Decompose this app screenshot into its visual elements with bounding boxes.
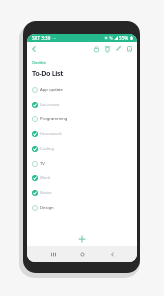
staticText: Programming [40, 116, 68, 122]
button[interactable]: Lock [91, 43, 102, 54]
button[interactable]: Work [32, 171, 132, 185]
button[interactable]: Notes [32, 186, 132, 200]
button[interactable]: Coding [32, 142, 132, 156]
button[interactable]: Homework [32, 127, 132, 141]
button[interactable]: Add task [76, 233, 88, 245]
staticText: TV [40, 161, 45, 167]
button[interactable]: Home [76, 248, 88, 260]
button[interactable]: TV [32, 157, 132, 171]
staticText: Homework [40, 131, 62, 137]
button[interactable]: Design [32, 201, 132, 215]
staticText: App update [40, 87, 63, 93]
staticText: Checklist [32, 60, 46, 65]
staticText: Coding [40, 146, 54, 152]
button[interactable]: Back [106, 248, 118, 260]
button[interactable]: Bookmark [124, 43, 135, 54]
staticText: 55% [119, 35, 129, 41]
button[interactable]: Edit [113, 43, 124, 54]
button[interactable]: Back [28, 43, 39, 54]
button[interactable]: Recents [46, 248, 58, 260]
staticText: Work [40, 175, 51, 181]
staticText: To-Do List [32, 68, 63, 78]
staticText: SKT 3:39 [32, 35, 51, 41]
staticText: Ice-cream [40, 102, 60, 108]
staticText: Notes [40, 190, 52, 196]
staticText: Design [40, 205, 54, 211]
button[interactable]: App update [32, 83, 132, 97]
button[interactable]: Delete [102, 43, 113, 54]
button[interactable]: Ice-cream [32, 98, 132, 112]
button[interactable]: Programming [32, 112, 132, 126]
